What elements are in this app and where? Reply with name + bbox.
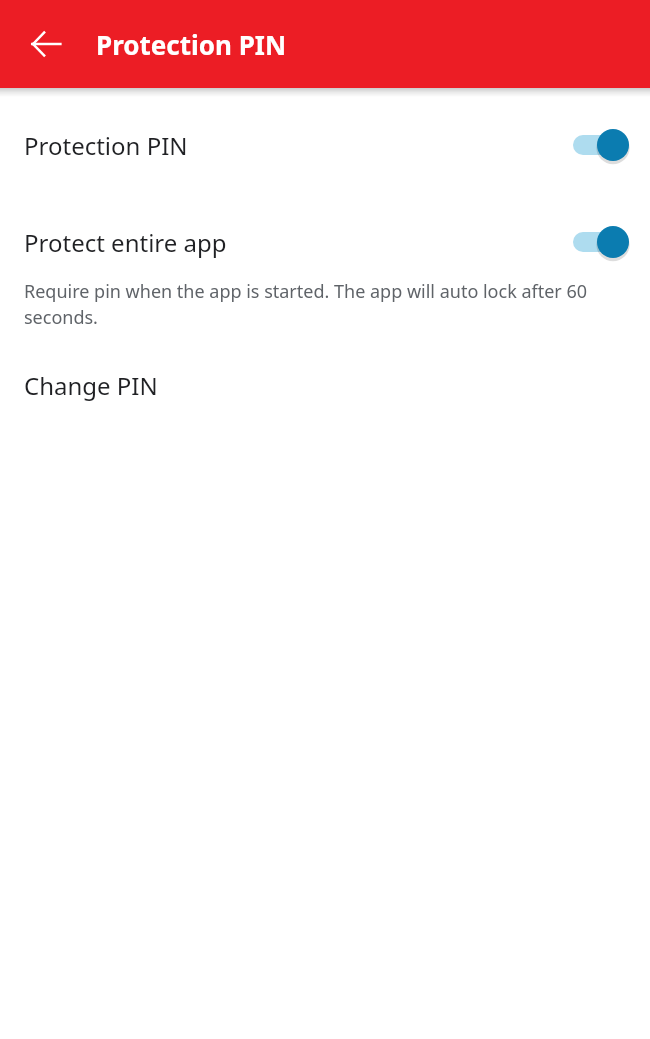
staticText: Require pin when the app is started. The…: [24, 279, 610, 330]
button[interactable]: Protect entire app: [0, 211, 650, 330]
staticText: Protection PIN: [24, 129, 564, 162]
button[interactable]: Protect entire app toggle: [564, 218, 636, 266]
button[interactable]: Protection PIN: [0, 97, 650, 193]
staticText: Change PIN: [24, 369, 158, 402]
staticText: Protection PIN: [96, 27, 287, 62]
button[interactable]: Back: [16, 14, 76, 74]
staticText: Protect entire app: [24, 226, 564, 259]
button[interactable]: Change PIN: [0, 354, 650, 416]
button[interactable]: Protection PIN toggle: [564, 121, 636, 169]
